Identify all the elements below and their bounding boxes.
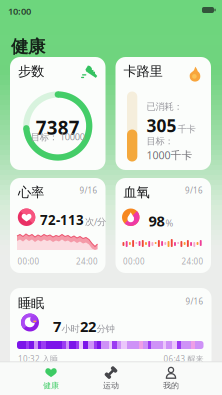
staticText: 步数 xyxy=(18,63,44,79)
staticText: 00:00 xyxy=(17,256,39,267)
staticText: 00:00 xyxy=(123,256,145,267)
staticText: 次/分 xyxy=(85,215,106,228)
staticText: 06:43 醒来 xyxy=(163,353,203,364)
staticText: 10:00 xyxy=(8,5,31,17)
staticText: 健康 xyxy=(11,36,45,57)
staticText: 7 xyxy=(53,316,61,336)
button[interactable]: 步数 xyxy=(10,57,105,170)
button[interactable]: 我的 xyxy=(141,363,201,394)
staticText: 运动 xyxy=(103,381,119,390)
staticText: % xyxy=(165,217,173,229)
staticText: 7387 xyxy=(36,115,80,140)
staticText: 24:00 xyxy=(76,256,98,267)
staticText: 9/16 xyxy=(79,185,97,196)
staticText: 目标： 10000 xyxy=(31,130,85,143)
staticText: 98 xyxy=(148,211,164,230)
staticText: 千卡 xyxy=(177,123,195,135)
staticText: 血氧 xyxy=(123,184,149,200)
staticText: 24:00 xyxy=(181,256,203,267)
button[interactable]: 运动 xyxy=(81,363,141,394)
staticText: 72-113 xyxy=(40,211,84,229)
staticText: 分钟 xyxy=(96,323,114,335)
button[interactable]: 健康 xyxy=(21,363,81,394)
staticText: 目标： xyxy=(146,135,173,147)
staticText: 10:32 入睡 xyxy=(18,353,58,364)
staticText: 22 xyxy=(80,316,96,336)
button[interactable]: 心率 xyxy=(10,178,105,273)
button[interactable]: 卡路里 xyxy=(115,57,211,170)
button[interactable]: 血氧 xyxy=(115,178,211,273)
staticText: 1000千卡 xyxy=(146,148,192,162)
staticText: 9/16 xyxy=(185,185,203,196)
staticText: 已消耗： xyxy=(146,101,182,112)
staticText: 卡路里 xyxy=(123,63,162,79)
button[interactable]: 睡眠 xyxy=(10,288,211,388)
staticText: 9/16 xyxy=(185,296,203,307)
staticText: 睡眠 xyxy=(18,295,44,311)
staticText: 健康 xyxy=(43,381,59,390)
staticText: 小时 xyxy=(61,323,79,335)
staticText: 我的 xyxy=(163,381,179,390)
staticText: 305 xyxy=(146,114,176,137)
staticText: 心率 xyxy=(18,184,44,200)
